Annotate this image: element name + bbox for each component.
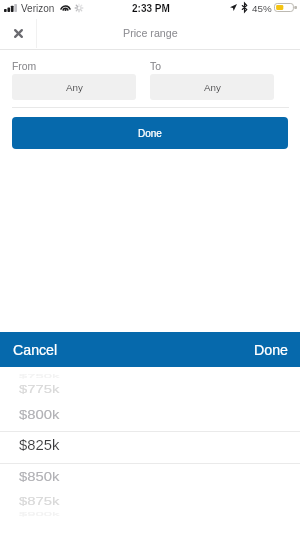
staticText: $775k (19, 383, 60, 395)
staticText: $875k (19, 495, 60, 507)
button[interactable]: Done (12, 117, 288, 149)
staticText: Cancel (13, 342, 58, 358)
button[interactable]: Any (12, 74, 136, 100)
staticText: Any (66, 82, 83, 93)
button[interactable]: Close (0, 18, 36, 49)
button[interactable]: Done (241, 332, 300, 367)
staticText: Price range (123, 27, 178, 39)
staticText: $900k (19, 512, 60, 517)
staticText: 45% (252, 3, 272, 14)
staticText: $825k (19, 437, 60, 454)
staticText: $800k (19, 407, 60, 422)
staticText: Done (254, 342, 288, 358)
staticText: Done (138, 128, 162, 139)
staticText: $750k (19, 374, 60, 379)
staticText: Verizon (21, 3, 55, 14)
staticText: From (12, 61, 37, 73)
staticText: 2:33 PM (132, 3, 170, 14)
staticText: $850k (19, 469, 60, 484)
staticText: To (150, 61, 161, 73)
button[interactable]: Cancel (0, 332, 71, 367)
button[interactable]: Any (150, 74, 274, 100)
staticText: Any (204, 82, 221, 93)
